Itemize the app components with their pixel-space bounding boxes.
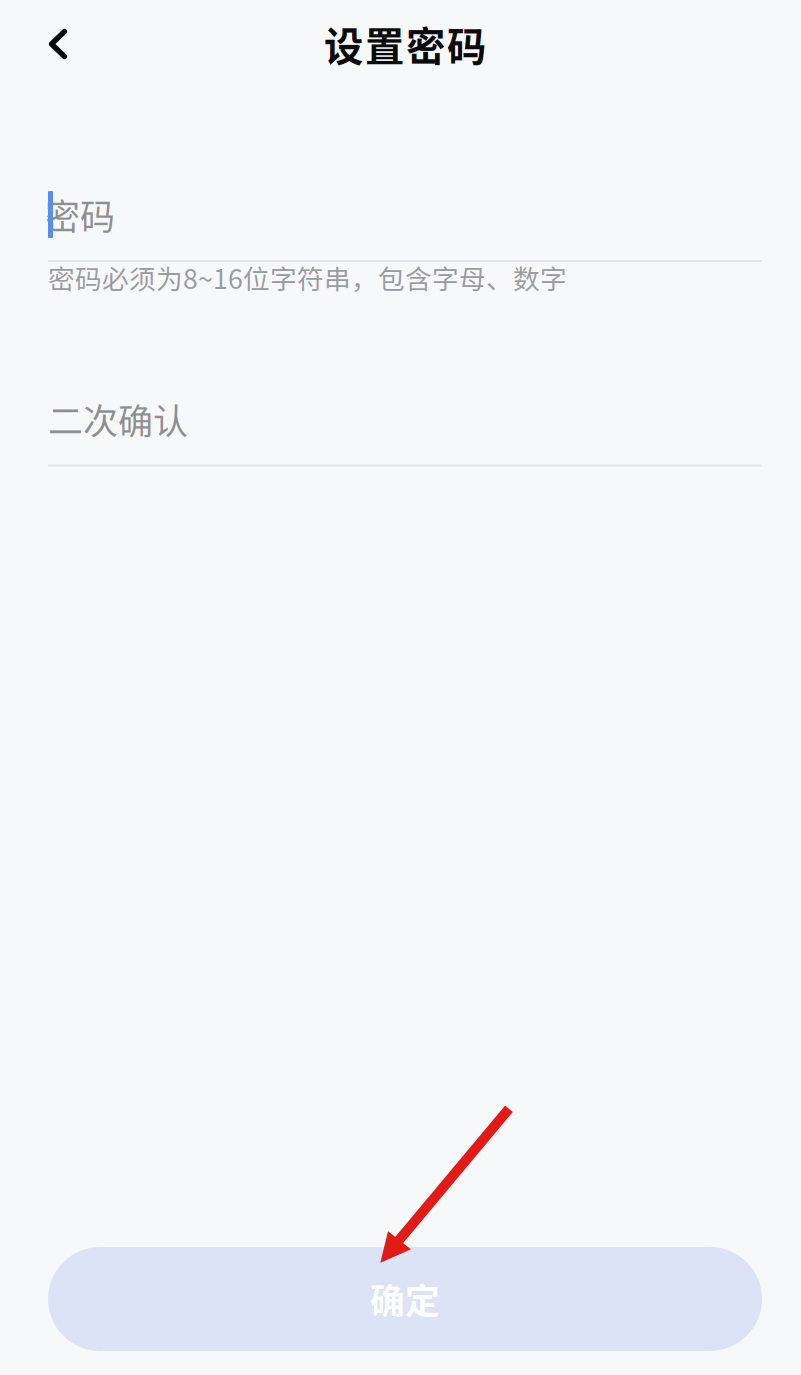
staticText: 密码 (45, 189, 115, 240)
button[interactable]: Back (48, 14, 67, 74)
button[interactable]: 二次确认 (48, 396, 762, 467)
staticText: 设置密码 (324, 15, 486, 72)
button[interactable]: 密码 (48, 191, 762, 262)
staticText: 密码必须为8~16位字符串，包含字母、数字 (48, 258, 567, 297)
staticText: 二次确认 (48, 394, 188, 444)
staticText: 确定 (370, 1274, 440, 1324)
button[interactable]: 确定 (48, 1247, 762, 1351)
